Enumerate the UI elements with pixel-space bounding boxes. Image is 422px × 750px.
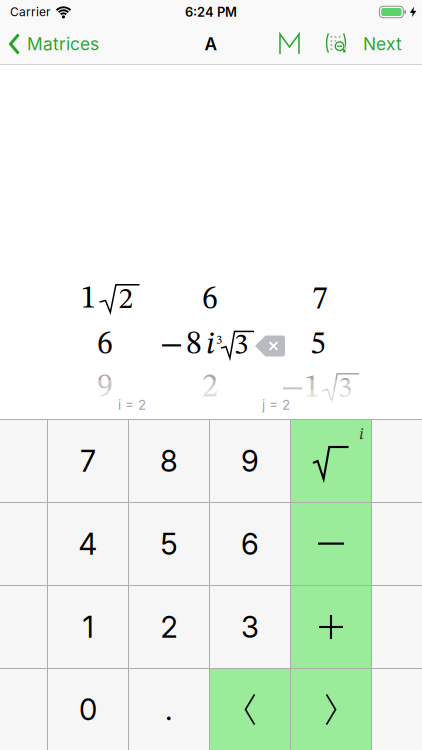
- staticText: −1: [281, 372, 320, 404]
- staticText: 5: [310, 329, 326, 361]
- staticText: 2: [202, 372, 218, 404]
- button[interactable]: Next: [347, 34, 422, 54]
- button[interactable]: 3: [210, 586, 290, 668]
- button[interactable]: 4: [48, 503, 128, 585]
- button[interactable]: 7: [48, 420, 128, 502]
- staticText: 8: [186, 329, 202, 361]
- staticText: i: [359, 426, 364, 443]
- button[interactable]: Matrices: [0, 33, 99, 54]
- staticText: 6:24 PM: [185, 4, 237, 20]
- staticText: Next: [363, 34, 402, 54]
- button[interactable]: Shrink matrix: [300, 34, 347, 54]
- staticText: −: [160, 329, 183, 361]
- button[interactable]: Right angle bracket: [291, 669, 371, 750]
- staticText: 4: [78, 527, 97, 561]
- button[interactable]: 9: [210, 420, 290, 502]
- button[interactable]: Left angle bracket: [210, 669, 290, 750]
- button[interactable]: 1: [48, 586, 128, 668]
- staticText: 1: [82, 610, 93, 644]
- staticText: .: [165, 692, 173, 727]
- staticText: Carrier: [10, 5, 51, 19]
- staticText: 6: [241, 527, 259, 561]
- button[interactable]: 0: [48, 669, 128, 750]
- button[interactable]: Matrix operations: [279, 33, 300, 55]
- button[interactable]: Minus: [291, 503, 371, 585]
- staticText: 0: [79, 692, 97, 727]
- button[interactable]: .: [129, 669, 209, 750]
- staticText: 1: [80, 283, 96, 315]
- staticText: 8: [160, 444, 178, 478]
- staticText: A: [204, 33, 217, 54]
- staticText: 6: [202, 284, 218, 316]
- staticText: 7: [312, 284, 328, 316]
- staticText: 3: [216, 334, 222, 347]
- staticText: i: [206, 329, 215, 361]
- button[interactable]: 8: [129, 420, 209, 502]
- staticText: j = 2: [262, 397, 290, 413]
- staticText: 2: [160, 610, 177, 644]
- button[interactable]: Delete: [255, 335, 285, 357]
- staticText: 5: [160, 527, 177, 561]
- staticText: i = 2: [118, 397, 146, 413]
- staticText: 9: [241, 444, 259, 478]
- button[interactable]: 5: [129, 503, 209, 585]
- button[interactable]: Plus: [291, 586, 371, 668]
- button[interactable]: 2: [129, 586, 209, 668]
- staticText: 9: [97, 372, 113, 404]
- button[interactable]: Square root i: [291, 420, 371, 502]
- staticText: 3: [234, 331, 249, 361]
- staticText: Matrices: [27, 34, 99, 54]
- staticText: 3: [241, 610, 259, 644]
- button[interactable]: 6: [210, 503, 290, 585]
- staticText: 7: [80, 444, 96, 478]
- staticText: 2: [118, 286, 133, 315]
- staticText: 3: [338, 375, 353, 404]
- staticText: 6: [97, 329, 113, 361]
